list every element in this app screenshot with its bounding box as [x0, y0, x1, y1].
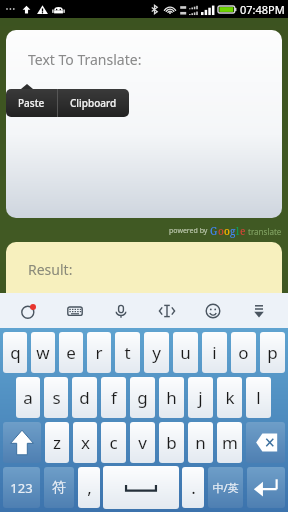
staticText: translate [246, 226, 282, 237]
staticText: 123 [10, 479, 33, 497]
staticText: d [79, 386, 90, 409]
staticText: t [124, 341, 131, 364]
staticText: e [66, 341, 76, 364]
button[interactable]: w [31, 332, 55, 373]
staticText: h [166, 386, 177, 409]
button[interactable]: 123 [3, 467, 40, 508]
button[interactable]: e [59, 332, 83, 373]
staticText: l [256, 386, 261, 409]
button[interactable]: y [144, 332, 169, 373]
staticText: k [225, 386, 235, 409]
button[interactable]: Space [103, 466, 179, 509]
button[interactable]: Clipboard [58, 89, 129, 117]
button[interactable]: f [101, 377, 126, 418]
button[interactable]: m [217, 422, 242, 463]
staticText: o [224, 224, 230, 238]
staticText: o [238, 341, 249, 364]
staticText: 符 [52, 479, 66, 497]
staticText: w [36, 341, 50, 364]
staticText: n [195, 431, 206, 454]
button[interactable]: Enter [247, 467, 285, 508]
staticText: y [152, 341, 161, 364]
staticText: m [222, 431, 238, 454]
button[interactable]: Emoji [196, 294, 230, 328]
button[interactable]: Move cursor [150, 294, 184, 328]
button[interactable]: z [45, 422, 69, 463]
button[interactable]: i [202, 332, 227, 373]
button[interactable]: k [217, 377, 242, 418]
button[interactable]: u [173, 332, 198, 373]
button[interactable]: r [87, 332, 111, 373]
staticText: p [267, 341, 278, 364]
staticText: 07:48PM [240, 2, 285, 17]
button[interactable]: g [130, 377, 155, 418]
staticText: v [138, 431, 147, 454]
button[interactable]: d [72, 377, 97, 418]
button[interactable]: j [188, 377, 213, 418]
staticText: Result: [28, 260, 73, 279]
staticText: j [198, 386, 203, 409]
button[interactable]: Text To Translate: [6, 30, 282, 218]
button[interactable]: Input method settings [12, 294, 46, 328]
button[interactable]: 符 [44, 467, 74, 508]
button[interactable]: s [44, 377, 68, 418]
button[interactable]: h [159, 377, 184, 418]
button[interactable]: 中/英 [208, 467, 243, 508]
button[interactable]: b [159, 422, 184, 463]
button[interactable]: l [246, 377, 271, 418]
staticText: i [212, 341, 217, 364]
staticText: Clipboard [70, 96, 117, 110]
button[interactable]: p [260, 332, 285, 373]
button[interactable]: x [73, 422, 97, 463]
staticText: u [180, 341, 191, 364]
staticText: s [52, 386, 61, 409]
staticText: q [10, 341, 21, 364]
staticText: l [236, 224, 240, 238]
staticText: Paste [18, 96, 45, 110]
button[interactable]: o [231, 332, 256, 373]
staticText: . [191, 476, 196, 499]
staticText: powered by [169, 226, 210, 236]
button[interactable]: c [101, 422, 126, 463]
button[interactable]: Hide keyboard [242, 294, 276, 328]
button[interactable]: , [78, 467, 100, 508]
staticText: r [95, 341, 103, 364]
staticText: , [87, 476, 92, 499]
button[interactable]: Backspace [246, 422, 285, 463]
staticText: b [166, 431, 177, 454]
button[interactable]: . [182, 467, 204, 508]
staticText: Text To Translate: [28, 50, 142, 69]
button[interactable]: Voice input [104, 294, 138, 328]
button[interactable]: t [115, 332, 140, 373]
button[interactable]: Keyboard layout [58, 294, 92, 328]
button[interactable]: a [16, 377, 40, 418]
staticText: a [23, 386, 33, 409]
button[interactable]: Paste [6, 89, 57, 117]
button[interactable]: v [130, 422, 155, 463]
staticText: e [240, 224, 246, 238]
staticText: c [109, 431, 118, 454]
staticText: G [210, 224, 218, 238]
staticText: f [111, 386, 117, 409]
staticText: z [53, 431, 61, 454]
staticText: o [218, 224, 224, 238]
staticText: x [81, 431, 90, 454]
staticText: g [137, 386, 148, 409]
staticText: g [230, 224, 236, 238]
staticText: 中/英 [212, 480, 239, 495]
button[interactable]: Shift [3, 422, 41, 463]
button[interactable]: n [188, 422, 213, 463]
button[interactable]: Result: [6, 242, 282, 293]
button[interactable]: q [3, 332, 27, 373]
